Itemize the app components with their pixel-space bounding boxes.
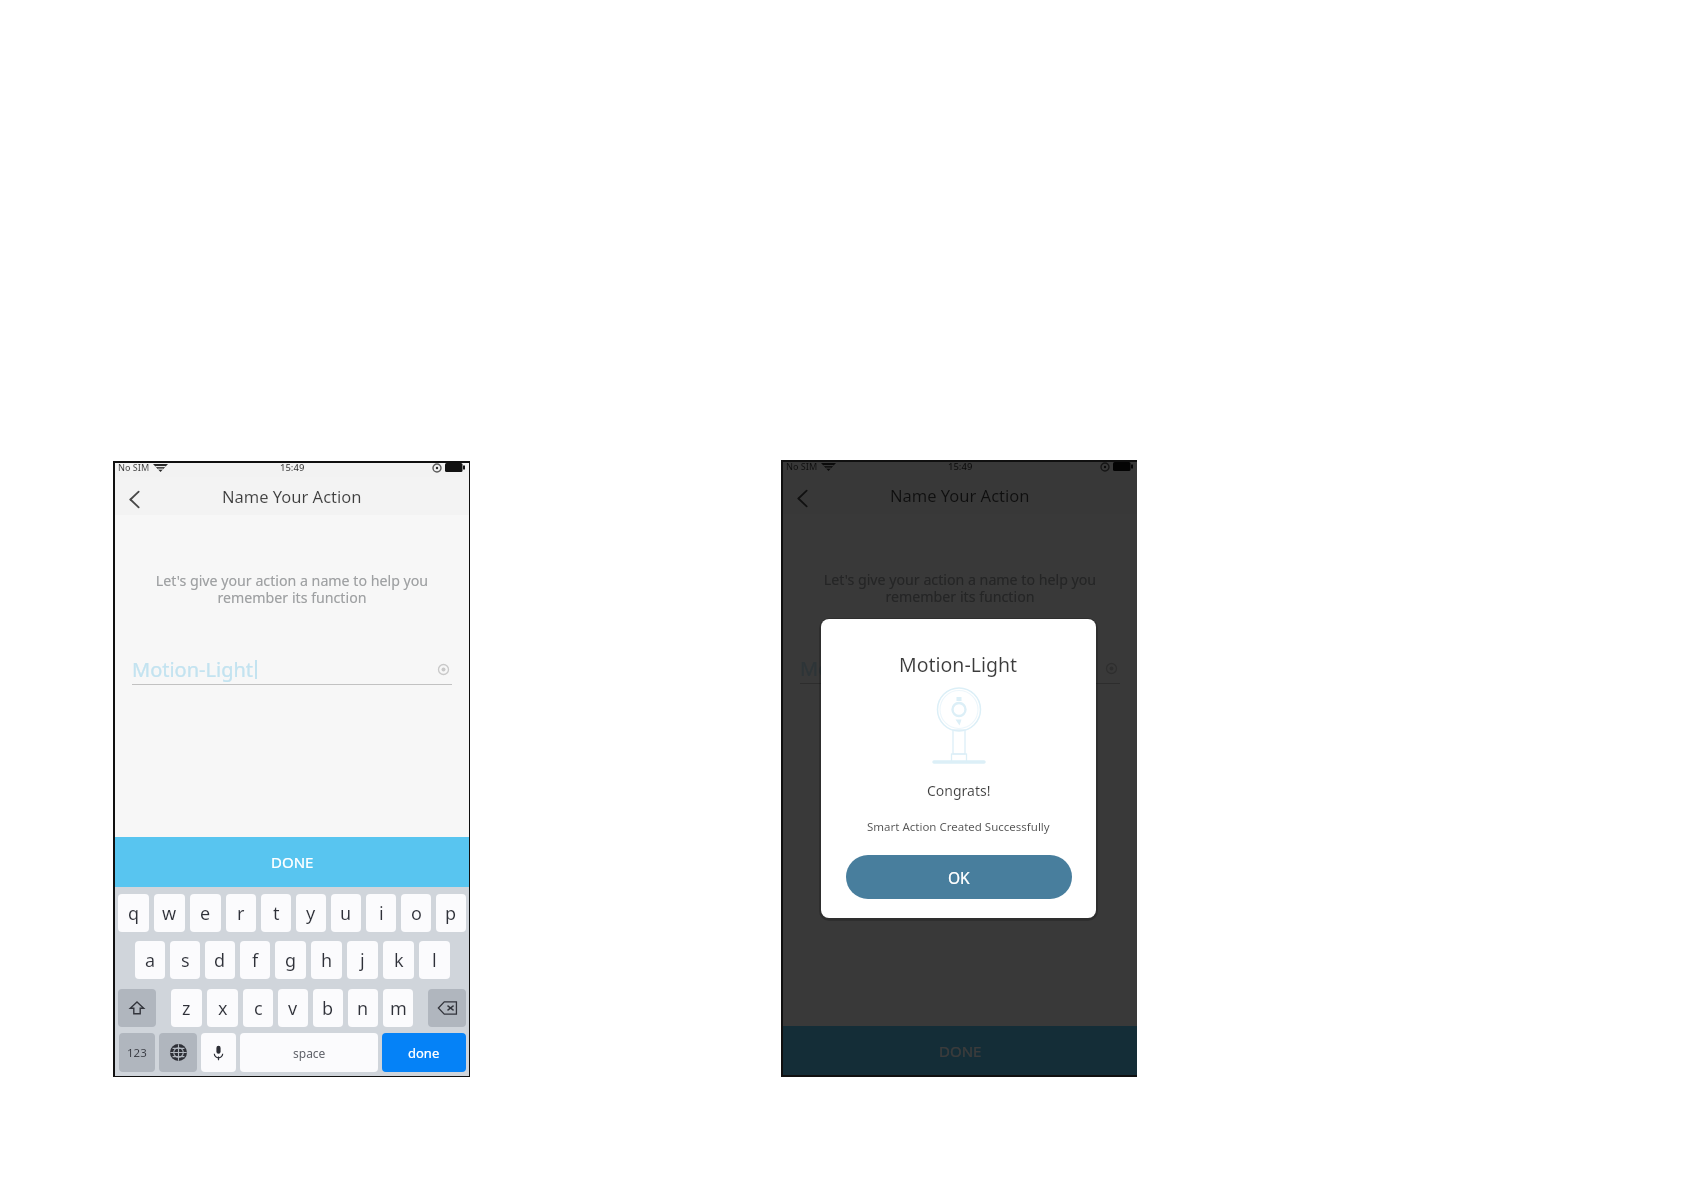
staticText: p	[445, 901, 457, 926]
staticText: Name Your Action	[222, 485, 362, 507]
button[interactable]: Back	[117, 482, 151, 516]
staticText: 15:49	[948, 460, 973, 473]
staticText: r	[237, 901, 245, 926]
button[interactable]: a	[135, 941, 165, 979]
staticText: j	[360, 948, 365, 973]
staticText: DONE	[939, 1041, 982, 1061]
staticText: f	[252, 948, 259, 973]
staticText: DONE	[271, 852, 314, 872]
button[interactable]: t	[261, 894, 291, 932]
button[interactable]: k	[383, 941, 414, 979]
staticText: y	[306, 901, 316, 926]
button[interactable]: g	[275, 941, 306, 979]
staticText: z	[182, 996, 191, 1021]
staticText: k	[394, 948, 404, 973]
button[interactable]: Backspace	[428, 989, 466, 1027]
staticText: e	[200, 901, 211, 926]
button[interactable]: space	[240, 1033, 378, 1072]
staticText: g	[285, 948, 297, 973]
button[interactable]: w	[154, 894, 185, 932]
button[interactable]: m	[383, 989, 413, 1027]
button[interactable]: s	[170, 941, 200, 979]
staticText: Motion-Light	[899, 651, 1018, 678]
button[interactable]: DONE	[115, 837, 469, 887]
button[interactable]: f	[240, 941, 270, 979]
staticText: Congrats!	[927, 781, 991, 800]
staticText: q	[128, 901, 140, 926]
button[interactable]: v	[278, 989, 308, 1027]
staticText: t	[273, 901, 280, 926]
staticText: b	[322, 996, 334, 1021]
staticText: Let's give your action a name to help yo…	[135, 571, 449, 608]
button[interactable]: y	[296, 894, 326, 932]
staticText: Let's give your action a name to help yo…	[803, 570, 1117, 607]
button[interactable]: b	[313, 989, 343, 1027]
staticText: c	[254, 996, 263, 1021]
staticText: h	[321, 948, 333, 973]
button[interactable]: p	[436, 894, 466, 932]
button[interactable]: l	[419, 941, 450, 979]
staticText: d	[214, 948, 226, 973]
button[interactable]: Motion-Light	[800, 652, 1120, 684]
button[interactable]: DONE	[783, 1026, 1137, 1075]
button[interactable]: i	[366, 894, 396, 932]
staticText: n	[357, 996, 369, 1021]
button[interactable]: Back	[785, 481, 819, 515]
button[interactable]: o	[401, 894, 431, 932]
button[interactable]: Clear text	[434, 660, 452, 678]
button[interactable]: 123	[119, 1033, 155, 1072]
button[interactable]: u	[331, 894, 361, 932]
button[interactable]: r	[226, 894, 256, 932]
staticText: v	[288, 996, 298, 1021]
button[interactable]: Voice input	[201, 1033, 236, 1072]
staticText: 123	[127, 1045, 147, 1061]
button[interactable]: e	[190, 894, 221, 932]
button[interactable]: c	[243, 989, 273, 1027]
staticText: a	[145, 948, 156, 973]
button[interactable]: j	[347, 941, 378, 979]
staticText: 15:49	[280, 461, 305, 474]
button[interactable]: Motion-Light	[132, 653, 452, 685]
button[interactable]: Switch language	[159, 1033, 197, 1072]
staticText: u	[340, 901, 352, 926]
button[interactable]: Shift	[118, 989, 156, 1027]
button[interactable]: x	[207, 989, 238, 1027]
staticText: Motion-Light	[132, 656, 254, 683]
staticText: done	[408, 1044, 440, 1062]
staticText: o	[411, 901, 422, 926]
button[interactable]: done	[382, 1033, 466, 1072]
button[interactable]: Clear text	[1102, 659, 1120, 677]
staticText: i	[379, 901, 384, 926]
staticText: space	[293, 1045, 326, 1061]
button[interactable]: OK	[846, 855, 1072, 899]
button[interactable]: h	[311, 941, 342, 979]
staticText: s	[181, 948, 190, 973]
staticText: w	[162, 901, 177, 926]
staticText: No SIM	[118, 461, 150, 473]
staticText: Name Your Action	[890, 484, 1030, 506]
button[interactable]: n	[348, 989, 378, 1027]
button[interactable]: z	[171, 989, 202, 1027]
staticText: Smart Action Created Successfully	[867, 819, 1050, 835]
staticText: No SIM	[786, 460, 818, 472]
staticText: l	[432, 948, 437, 973]
button[interactable]: d	[205, 941, 235, 979]
button[interactable]: q	[118, 894, 149, 932]
staticText: x	[218, 996, 228, 1021]
staticText: Motion-Light	[800, 655, 922, 682]
staticText: OK	[948, 867, 970, 888]
staticText: m	[390, 996, 407, 1021]
